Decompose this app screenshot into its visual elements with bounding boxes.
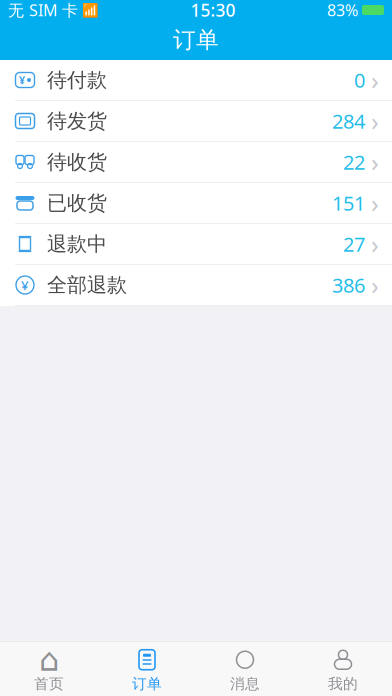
staticText: 386 — [332, 272, 365, 298]
staticText: › — [371, 63, 379, 97]
staticText: 27 — [343, 231, 365, 257]
button[interactable]: 已收货 — [0, 183, 392, 224]
button[interactable]: ¥ — [0, 265, 392, 306]
staticText: 待收货 — [47, 150, 107, 174]
staticText: 全部退款 — [47, 273, 127, 297]
staticText: 待发货 — [47, 109, 107, 133]
staticText: 消息 — [230, 675, 260, 693]
staticText: 无 SIM 卡 — [8, 0, 78, 21]
staticText: › — [371, 104, 379, 138]
button[interactable]: 待发货 — [0, 101, 392, 142]
button[interactable]: ⌂ — [0, 642, 98, 696]
button[interactable]: 消息 — [196, 642, 294, 696]
staticText: 订单 — [173, 26, 219, 54]
button[interactable]: 待收货 — [0, 142, 392, 183]
staticText: 已收货 — [47, 191, 107, 215]
staticText: › — [371, 268, 379, 302]
button[interactable]: 退款中 — [0, 224, 392, 265]
staticText: ¥ — [19, 73, 25, 87]
staticText: 首页 — [34, 675, 64, 693]
staticText: 22 — [343, 149, 365, 175]
staticText: ⌂ — [39, 642, 59, 678]
staticText: 0 — [354, 67, 365, 93]
staticText: 83% — [327, 0, 358, 21]
button[interactable]: ¥ — [0, 60, 392, 101]
staticText: › — [371, 227, 379, 261]
staticText: 订单 — [132, 675, 162, 693]
staticText: 退款中 — [47, 232, 107, 256]
staticText: › — [371, 186, 379, 220]
staticText: 我的 — [328, 675, 358, 693]
staticText: 151 — [332, 190, 365, 216]
staticText: 284 — [332, 108, 365, 134]
staticText: 📶 — [82, 2, 99, 18]
staticText: › — [371, 145, 379, 179]
button[interactable]: 订单 — [98, 642, 196, 696]
staticText: ¥ — [21, 276, 29, 294]
button[interactable]: 我的 — [294, 642, 392, 696]
staticText: 15:30 — [190, 0, 235, 21]
staticText: 待付款 — [47, 68, 107, 92]
